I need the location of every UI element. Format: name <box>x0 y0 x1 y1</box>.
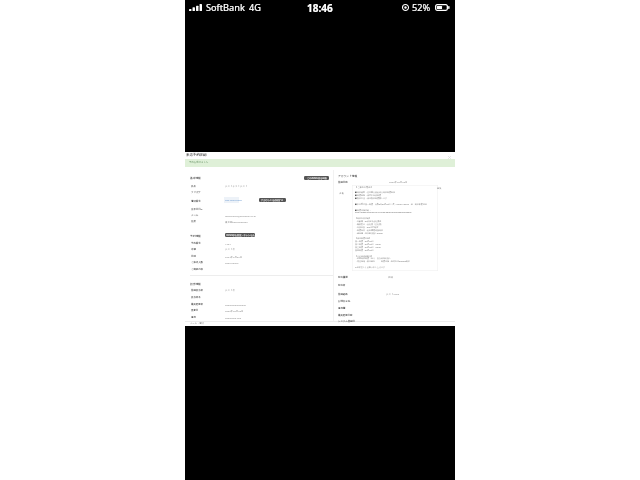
staticText: 最終更新者 <box>191 303 203 306</box>
staticText: 0000年00月00日 <box>389 180 408 183</box>
staticText: 4G <box>249 1 261 14</box>
staticText: 東京都00000000000 <box>225 220 248 223</box>
button[interactable]: アカウントを作成する <box>259 198 286 202</box>
staticText: ■本日受付第一希望 令和0年00月00日（月）00:00〜00:00 他 相談希… <box>355 203 427 206</box>
staticText: ・備考欄：特記事項無し00000 <box>355 232 383 235</box>
staticText: 【ご来店の理由】 <box>355 186 373 189</box>
staticText: 0000-00000 <box>225 261 239 264</box>
staticText: ・年収目安：000万円程度 <box>355 226 379 229</box>
staticText: 予約情報 <box>190 234 201 237</box>
staticText: 2024年0月00日 <box>225 255 243 258</box>
button[interactable]: 予約内容を変更・キャンセル <box>225 233 255 237</box>
staticText: 担当者名 <box>191 296 201 299</box>
staticText: メール・電話 <box>190 322 204 325</box>
staticText: 日時 <box>191 255 196 258</box>
staticText: 第四希望：00月00日 <box>355 249 374 252</box>
staticText: ※何卒宜しくお願い申し上げます <box>355 266 386 269</box>
staticText: システム登録日 <box>338 320 355 323</box>
staticText: ■希望時期：来月中旬頃希望 <box>355 194 381 197</box>
staticText: 登録日時 <box>338 181 348 184</box>
staticText: 予約内容を変更・キャンセル <box>226 234 255 237</box>
staticText: ・職業区分：会社員（正社員） <box>355 223 383 226</box>
staticText: http://www.example.co.jp/shop/detail/000… <box>355 211 412 214</box>
staticText: アカウント情報 <box>338 174 358 177</box>
staticText: ・希望条件：金利優遇借換相談 <box>355 229 383 232</box>
staticText: テスト0000 <box>386 292 400 295</box>
staticText: 52% <box>412 1 431 14</box>
staticText: 備考 <box>191 316 196 319</box>
staticText: 編集 <box>437 187 442 190</box>
staticText: 詳細 <box>388 276 393 279</box>
staticText: テスト店 <box>225 289 235 292</box>
staticText: ・年齢層：00代前半会社員様 <box>355 220 382 223</box>
staticText: 18:46 <box>307 1 333 15</box>
staticText: テスト店 <box>225 248 235 251</box>
button[interactable]: 090-0000-0000 <box>225 197 242 202</box>
staticText: 電話番号 <box>191 200 201 203</box>
staticText: 000000000000000 <box>225 303 246 306</box>
staticText: 【相談内容詳細】 <box>355 217 371 220</box>
staticText: 担当情報 <box>190 282 201 285</box>
staticText: ■面談方法：来店面談希望致します <box>355 197 388 200</box>
staticText: 来店予約詳細 <box>186 153 207 157</box>
staticText: 0000年00月00日 <box>225 309 244 312</box>
staticText: 店舗 <box>191 248 196 251</box>
staticText: SoftBank <box>206 1 245 14</box>
staticText: 最終更新日時 <box>338 314 353 317</box>
staticText: ■相談種別：住宅購入資金借入相談希望新規 <box>355 191 395 194</box>
staticText: 対応者 <box>338 284 346 287</box>
staticText: 【来店希望日時】 <box>355 237 371 240</box>
staticText: メール <box>191 214 199 217</box>
staticText: 第一希望：00月00日 <box>355 240 374 243</box>
staticText: ・居住地域：東京都内 希望店舗：新宿支店000000相談 <box>355 260 410 263</box>
staticText: 備考欄 <box>338 307 346 310</box>
staticText: ■希望店舗詳細： <box>355 209 371 212</box>
staticText: 00000000-000 <box>225 316 242 319</box>
staticText: 予約を受付ました <box>189 161 209 164</box>
staticText: お問合せ先 <box>338 300 351 303</box>
staticText: 基本情報 <box>190 176 201 179</box>
staticText: 第三希望：00月00日 00:00 <box>355 246 381 249</box>
staticText: 第二希望：00月00日 00:00 <box>355 243 381 246</box>
staticText: 登録担当者 <box>191 289 203 292</box>
button[interactable]: この予約内容を編集 <box>304 176 329 180</box>
staticText: メモ <box>339 192 344 195</box>
staticText: 対応履歴 <box>338 276 348 279</box>
staticText: ・初回相談希望：有り 担当者指名無し <box>355 257 392 260</box>
button[interactable]: 詳細 <box>388 275 393 280</box>
staticText: テストテストテスト <box>225 185 248 188</box>
staticText: 更新日 <box>191 309 199 312</box>
staticText: 1234 <box>225 242 231 245</box>
staticText: フリガナ <box>191 191 201 194</box>
staticText: testtest000@example.co.jp <box>225 214 256 217</box>
staticText: ご来店人数 <box>191 261 204 264</box>
staticText: 登録経路 <box>338 293 348 296</box>
staticText: この予約内容を編集 <box>307 177 327 180</box>
staticText: 【その他連絡事項】 <box>355 255 374 258</box>
staticText: 生年月日※ <box>191 207 203 210</box>
staticText: 氏名 <box>191 185 196 188</box>
button[interactable]: 編集 <box>437 186 442 191</box>
staticText: 住所 <box>191 220 196 223</box>
staticText: ご相談内容 <box>191 268 204 271</box>
button[interactable]: お知らせを閉じる <box>446 154 453 161</box>
staticText: 予約番号 <box>191 242 201 245</box>
staticText: 090-0000-0000 <box>225 198 242 201</box>
staticText: アカウントを作成する <box>261 199 284 202</box>
